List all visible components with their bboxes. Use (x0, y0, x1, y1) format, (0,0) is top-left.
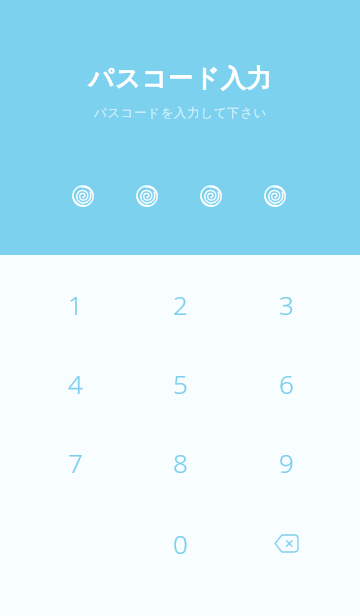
staticText: 5 (173, 366, 188, 401)
staticText: 4 (68, 366, 83, 401)
button[interactable]: Delete (238, 507, 334, 579)
button[interactable]: 1 (27, 268, 123, 340)
button[interactable]: 5 (132, 347, 228, 419)
staticText: パスコード入力 (88, 63, 273, 94)
staticText: 3 (279, 287, 294, 322)
button[interactable]: 9 (238, 426, 334, 498)
staticText: 1 (68, 287, 83, 322)
staticText: 9 (279, 445, 294, 480)
button[interactable]: 7 (27, 426, 123, 498)
button[interactable]: 6 (238, 347, 334, 419)
staticText: パスコードを入力して下さい (94, 105, 267, 121)
button[interactable]: 2 (132, 268, 228, 340)
button[interactable]: 8 (132, 426, 228, 498)
button[interactable]: 3 (238, 268, 334, 340)
staticText: 8 (173, 445, 188, 480)
staticText: 7 (68, 445, 83, 480)
staticText: 6 (279, 366, 294, 401)
button[interactable]: 4 (27, 347, 123, 419)
staticText: 2 (173, 287, 188, 322)
button[interactable]: 0 (132, 507, 228, 579)
staticText: 0 (173, 526, 188, 561)
